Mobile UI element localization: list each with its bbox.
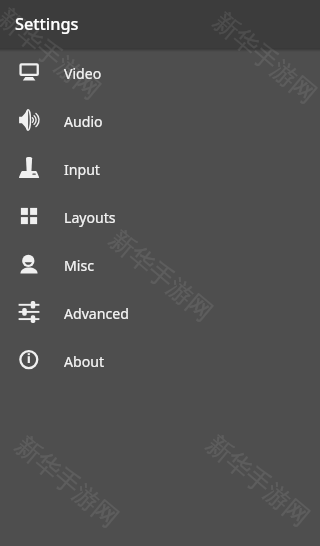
staticText: Settings (15, 13, 79, 35)
staticText: Input (64, 160, 100, 179)
staticText: About (64, 352, 104, 371)
staticText: Advanced (64, 304, 129, 323)
staticText: 新华手游网 (201, 429, 316, 532)
staticText: Misc (64, 256, 94, 275)
staticText: 新华手游网 (10, 430, 125, 533)
button[interactable]: About (0, 336, 320, 384)
staticText: Layouts (64, 208, 116, 227)
staticText: Video (64, 64, 102, 83)
button[interactable]: Misc (0, 240, 320, 288)
button[interactable]: Settings (0, 0, 320, 48)
button[interactable]: Layouts (0, 192, 320, 240)
staticText: 新华手游网 (104, 224, 219, 327)
button[interactable]: Advanced (0, 288, 320, 336)
button[interactable]: Audio (0, 96, 320, 144)
staticText: Audio (64, 112, 103, 131)
staticText: 新华手游网 (208, 6, 320, 109)
button[interactable]: Video (0, 48, 320, 96)
button[interactable]: Input (0, 144, 320, 192)
staticText: 新华手游网 (0, 2, 107, 105)
